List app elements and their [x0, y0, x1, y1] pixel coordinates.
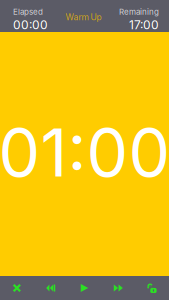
staticText: 01:00 — [0, 113, 169, 192]
button[interactable]: Lock screen — [135, 276, 169, 300]
staticText: Elapsed — [13, 7, 43, 17]
staticText: 00:00 — [13, 18, 48, 32]
staticText: 17:00 — [129, 18, 159, 32]
staticText: Warm Up — [65, 12, 101, 22]
button[interactable]: End workout — [0, 276, 34, 300]
button[interactable]: Next interval — [101, 276, 135, 300]
staticText: Remaining — [119, 7, 159, 17]
button[interactable]: Previous interval — [34, 276, 68, 300]
button[interactable]: Start — [68, 276, 101, 300]
